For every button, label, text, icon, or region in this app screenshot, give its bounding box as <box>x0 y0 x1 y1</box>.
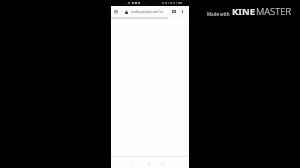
button[interactable]: studio.youtube.com <box>130 6 170 17</box>
staticText: Made with <box>207 11 230 17</box>
button[interactable]: Home <box>111 6 121 17</box>
button[interactable]: Tabs <box>169 6 178 17</box>
staticText: MASTER <box>256 5 292 18</box>
button[interactable]: More options <box>179 6 188 17</box>
staticText: KINE <box>232 5 256 18</box>
staticText: studio.youtube.com <box>131 10 159 14</box>
staticText: /ch <box>159 10 164 14</box>
button[interactable]: Site information <box>123 7 130 18</box>
button[interactable]: Recent apps <box>155 158 170 168</box>
button[interactable]: Home <box>142 158 157 168</box>
